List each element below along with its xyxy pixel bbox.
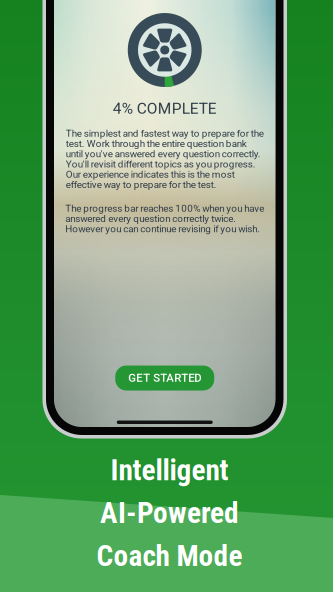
button[interactable]: GET STARTED [115,365,214,390]
staticText: The progress bar reaches 100% when you h… [65,202,264,235]
staticText: AI-Powered [100,496,239,530]
staticText: 4% COMPLETE [113,99,217,118]
staticText: The simplest and fastest way to prepare … [66,128,264,190]
staticText: Coach Mode [96,539,242,573]
staticText: GET STARTED [128,371,201,385]
staticText: Intelligent [110,453,228,487]
